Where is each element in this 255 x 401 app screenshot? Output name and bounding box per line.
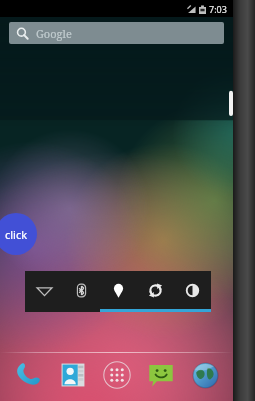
button[interactable]: Browser (183, 353, 227, 397)
button[interactable]: Phone (6, 353, 51, 397)
button[interactable]: Google (9, 22, 224, 44)
staticText: click (5, 227, 28, 242)
button[interactable]: click (0, 213, 37, 255)
button[interactable]: Location (100, 271, 137, 309)
staticText: Google (36, 26, 72, 41)
button[interactable]: Brightness (174, 271, 211, 309)
button[interactable]: People (51, 353, 95, 397)
button[interactable]: Wi-Fi (25, 271, 63, 309)
button[interactable]: Bluetooth (63, 271, 100, 309)
button[interactable]: Sync (137, 271, 174, 309)
staticText: 7:03 (209, 3, 227, 15)
button[interactable]: Messaging (139, 353, 183, 397)
button[interactable]: Apps (95, 353, 139, 397)
